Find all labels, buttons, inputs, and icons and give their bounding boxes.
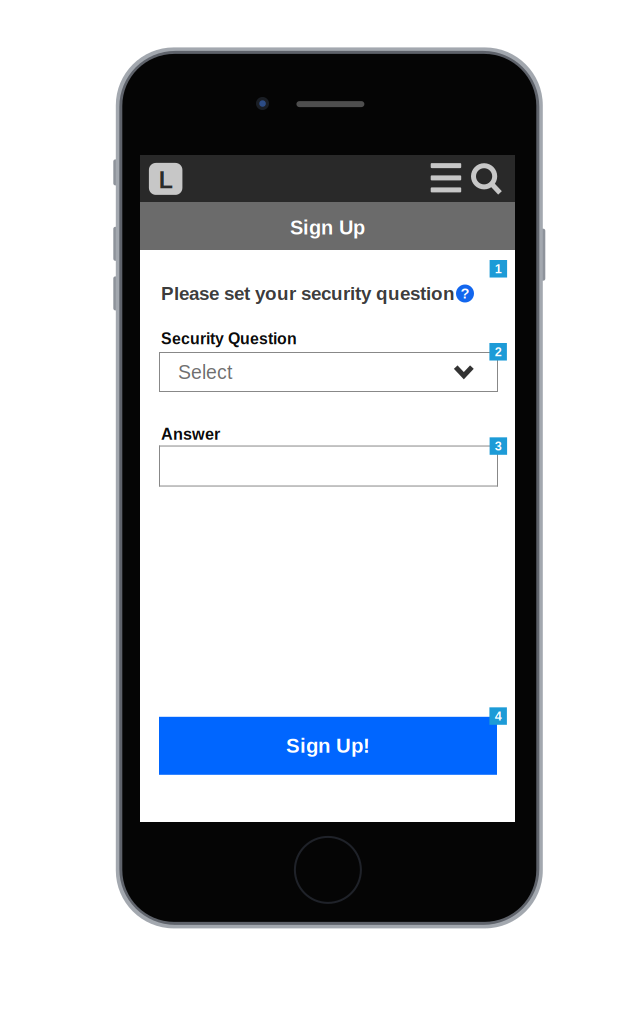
button[interactable]: Search xyxy=(469,161,504,196)
button[interactable]: Menu xyxy=(429,161,463,194)
staticText: Select xyxy=(178,361,232,383)
staticText: Security Question xyxy=(161,330,297,348)
button[interactable]: Help xyxy=(456,284,474,302)
staticText: Please set your security question xyxy=(161,283,455,304)
staticText: 3 xyxy=(495,439,502,453)
button[interactable]: Answer xyxy=(159,445,498,486)
staticText: 1 xyxy=(495,262,502,276)
staticText: 2 xyxy=(495,345,502,359)
button[interactable]: Home xyxy=(149,163,182,195)
staticText: Sign Up xyxy=(290,216,365,239)
staticText: Answer xyxy=(161,425,220,443)
staticText: L xyxy=(159,167,173,193)
button[interactable]: Sign Up! xyxy=(159,717,497,775)
staticText: Sign Up! xyxy=(286,734,370,757)
staticText: ? xyxy=(460,285,469,302)
button[interactable]: Security question xyxy=(159,352,498,392)
staticText: 4 xyxy=(495,709,502,723)
